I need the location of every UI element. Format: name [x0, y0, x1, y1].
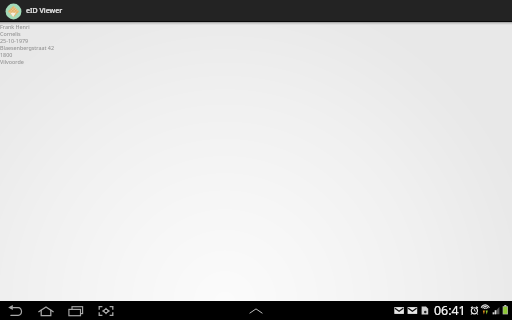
- staticText: Cornelis: [0, 30, 21, 37]
- button[interactable]: Notifications: [249, 306, 263, 316]
- staticText: Frank Henri: [0, 23, 30, 30]
- button[interactable]: Screenshot: [94, 301, 118, 320]
- button[interactable]: Back: [4, 301, 28, 320]
- staticText: Blaesenbergstraat 42: [0, 44, 54, 51]
- button[interactable]: Home: [34, 301, 58, 320]
- button[interactable]: Recent apps: [64, 301, 88, 320]
- staticText: eID Viewer: [26, 6, 63, 16]
- staticText: 1800: [0, 51, 13, 58]
- button[interactable]: Status: [390, 301, 512, 320]
- staticText: 06:41: [434, 302, 466, 319]
- button[interactable]: App icon, up: [5, 3, 22, 20]
- staticText: Vilvoorde: [0, 58, 24, 65]
- staticText: 25-10-1979: [0, 37, 29, 44]
